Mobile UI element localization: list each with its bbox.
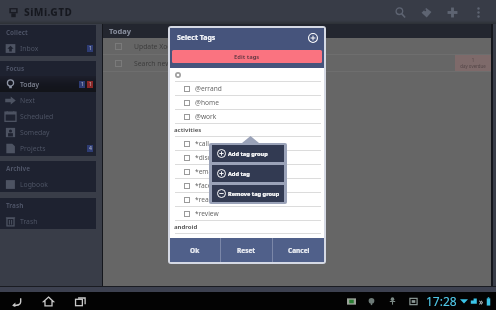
staticText: Trash	[20, 217, 38, 226]
button[interactable]: Inbox	[0, 40, 96, 56]
button[interactable]: Search	[390, 2, 410, 22]
button[interactable]: Projects	[0, 140, 96, 156]
button[interactable]: *email	[170, 165, 324, 178]
staticText: Edit tags	[234, 53, 260, 61]
staticText: 1	[81, 81, 84, 88]
button[interactable]: *read	[170, 193, 324, 206]
staticText: *call	[195, 139, 209, 148]
button[interactable]: *review	[170, 207, 324, 220]
staticText: Select Tags	[177, 33, 216, 43]
staticText: Search new wallpapers	[134, 59, 208, 68]
button[interactable]: Today	[0, 76, 96, 92]
staticText: 17:28	[426, 293, 457, 309]
staticText: *read	[195, 195, 213, 204]
staticText: @errand	[195, 84, 222, 93]
button[interactable]: Recents	[71, 292, 89, 310]
staticText: Cancel	[288, 246, 310, 255]
staticText: Logbook	[20, 180, 48, 189]
button[interactable]: @home	[170, 96, 324, 109]
staticText: *review	[195, 209, 219, 218]
button[interactable]: @work	[170, 110, 324, 123]
staticText: android	[174, 223, 198, 231]
staticText: Today	[109, 26, 132, 36]
button[interactable]: Search new wallpapers	[103, 55, 491, 71]
staticText: Ok	[190, 246, 200, 255]
staticText: 1 day overdue	[460, 57, 486, 69]
staticText: *email	[195, 167, 216, 176]
staticText: Collect	[6, 28, 28, 37]
staticText: 4	[89, 145, 92, 152]
button[interactable]: Add tag group	[212, 145, 284, 162]
button[interactable]: Logbook	[0, 176, 96, 192]
button[interactable]: Remove tag group	[212, 185, 284, 202]
staticText: Add tag group	[228, 150, 268, 158]
button[interactable]: Trash	[0, 213, 96, 229]
staticText: *discuss	[195, 153, 222, 162]
staticText: @home	[195, 98, 219, 107]
staticText: *face	[195, 181, 212, 190]
button[interactable]: @errand	[170, 82, 324, 95]
staticText: Remove tag group	[228, 190, 280, 198]
staticText: activities	[174, 126, 202, 134]
button[interactable]: Tags	[416, 2, 436, 22]
button[interactable]: Next	[0, 92, 96, 108]
staticText: @work	[195, 112, 217, 121]
button[interactable]: Reset	[221, 238, 272, 262]
button[interactable]: Add tag	[212, 165, 284, 182]
button[interactable]: Home	[39, 292, 57, 310]
staticText: SiMi.GTD	[24, 5, 73, 19]
staticText: 1	[89, 81, 92, 88]
staticText: Today	[20, 80, 39, 89]
button[interactable]: Update Xoom wallpaper	[103, 38, 491, 54]
button[interactable]: Add	[442, 2, 462, 22]
button[interactable]: Edit tags	[172, 50, 322, 63]
staticText: Inbox	[20, 44, 39, 53]
button[interactable]: Someday	[0, 124, 96, 140]
staticText: Reset	[237, 246, 256, 255]
button[interactable]: *discuss	[170, 151, 324, 164]
button[interactable]: Back	[7, 292, 25, 310]
staticText: Projects	[20, 144, 46, 153]
staticText: Add tag	[228, 170, 250, 178]
button[interactable]: Add tag	[306, 31, 319, 44]
staticText: Update Xoom wallpaper	[134, 42, 212, 51]
staticText: Someday	[20, 128, 50, 137]
button[interactable]: Ok	[170, 238, 220, 262]
staticText: Focus	[6, 64, 25, 73]
button[interactable]: Scheduled	[0, 108, 96, 124]
staticText: »	[479, 296, 484, 307]
staticText: Archive	[6, 164, 30, 173]
button[interactable]: *call	[170, 137, 324, 150]
staticText: Next	[20, 96, 35, 105]
button[interactable]: Cancel	[273, 238, 324, 262]
button[interactable]: *face	[170, 179, 324, 192]
staticText: Scheduled	[20, 112, 54, 121]
staticText: Trash	[6, 201, 24, 210]
staticText: 1	[89, 45, 92, 52]
button[interactable]: More options	[468, 2, 488, 22]
